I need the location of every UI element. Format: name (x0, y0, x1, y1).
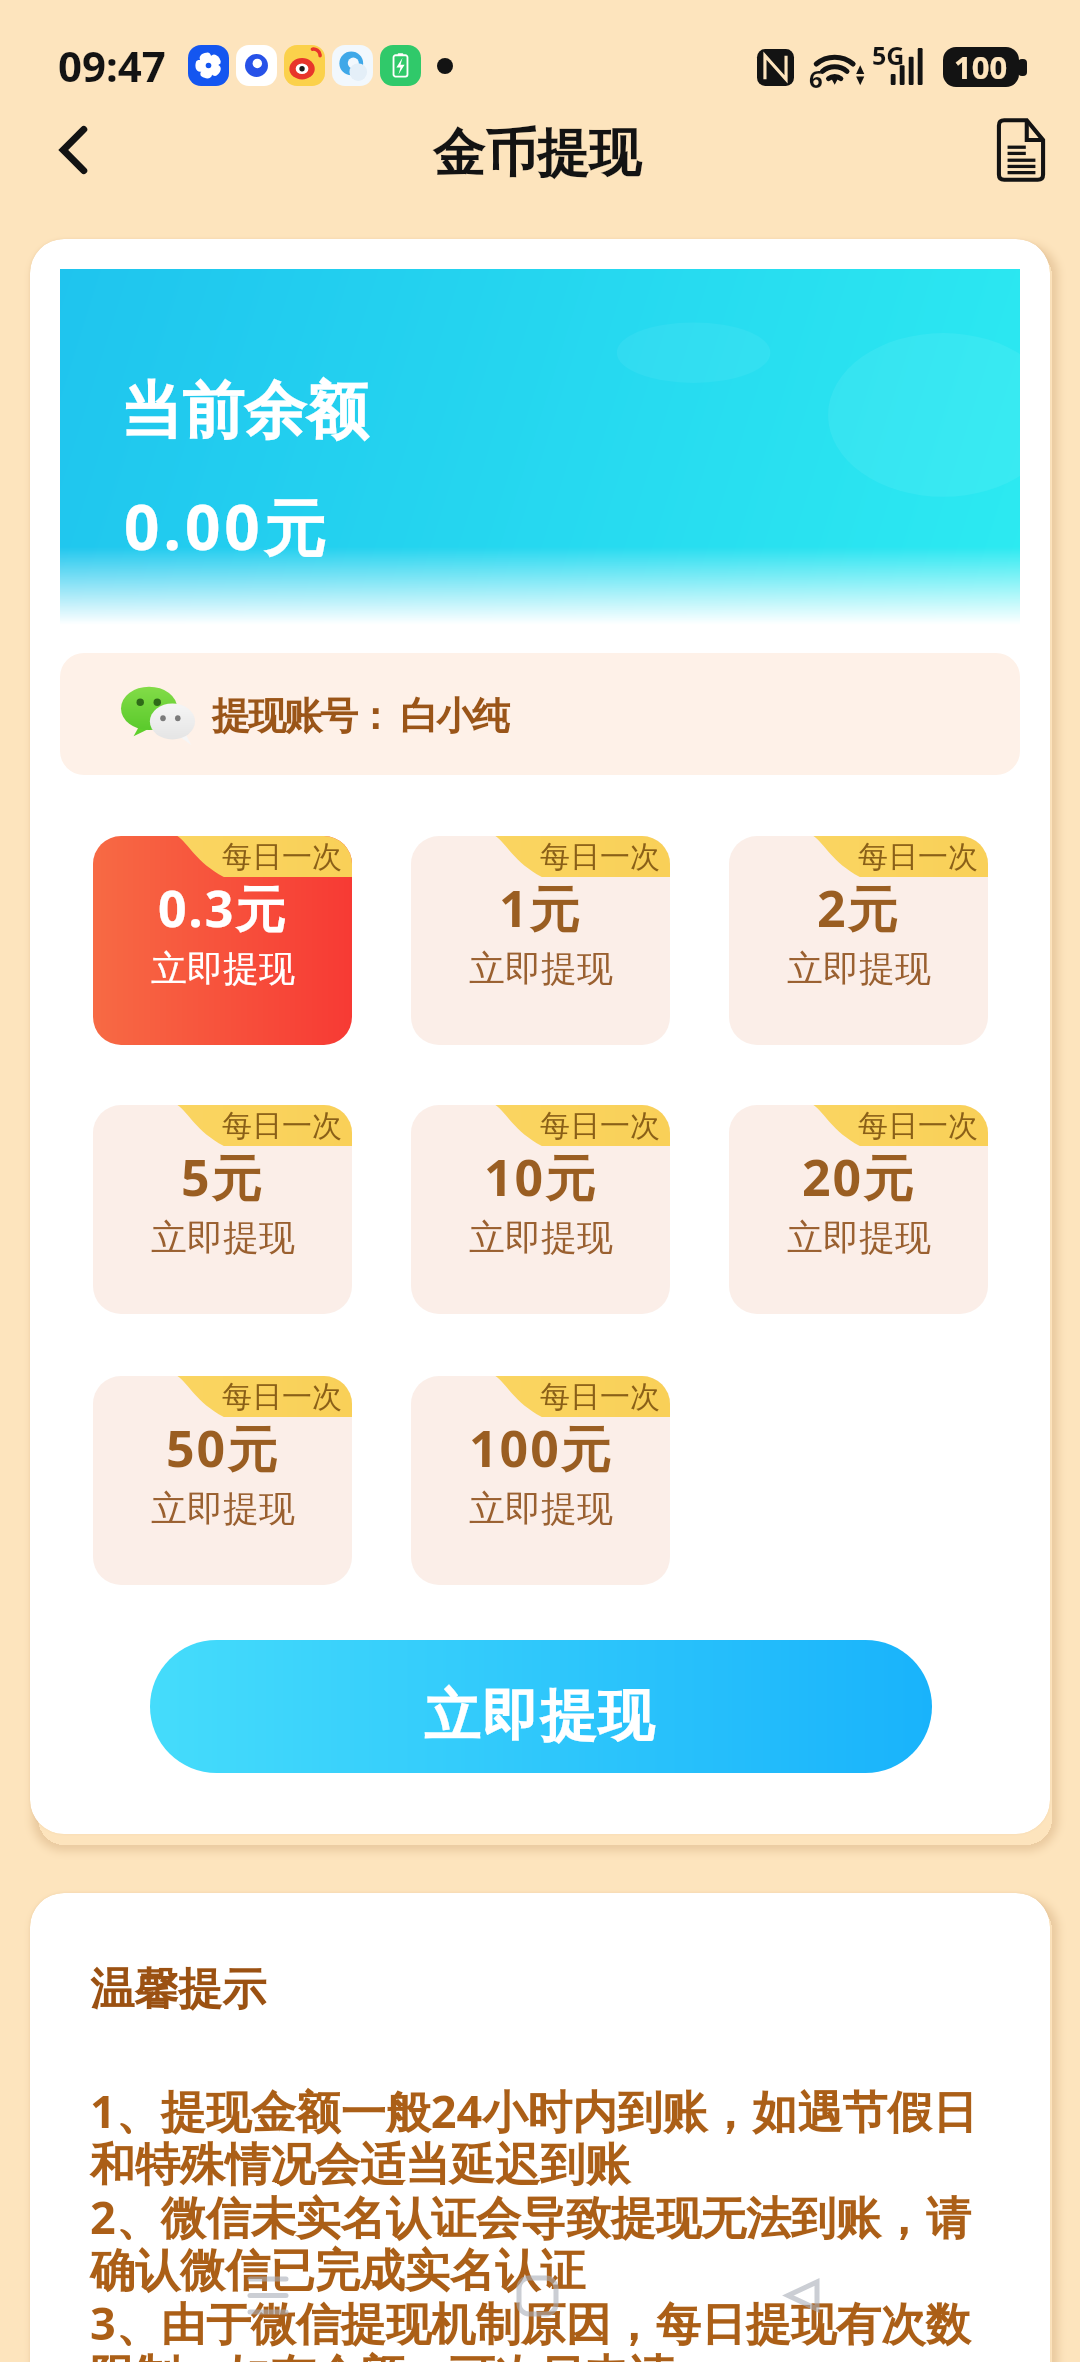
button[interactable]: 提现账号： 白小纯 (60, 653, 1020, 775)
staticText: 2元 (817, 874, 900, 942)
staticText: 当前余额 (120, 372, 368, 450)
button[interactable]: 每日一次 (93, 1376, 352, 1585)
staticText: 立即提现 (787, 946, 931, 991)
staticText: 每日一次 (858, 1107, 978, 1145)
staticText: 100元 (469, 1414, 613, 1482)
staticText: 立即提现 (151, 1215, 295, 1260)
staticText: 每日一次 (540, 1378, 660, 1416)
staticText: 5G (872, 38, 905, 72)
button[interactable]: Withdraw records (978, 107, 1064, 193)
staticText: 09:47 (58, 37, 166, 94)
button[interactable]: 每日一次 (411, 1376, 670, 1585)
staticText: 0.3元 (158, 874, 288, 942)
staticText: 温馨提示 (90, 1962, 266, 2017)
staticText: 100 (954, 47, 1008, 86)
button[interactable]: 立即提现 (150, 1640, 932, 1773)
button[interactable]: 每日一次 (411, 1105, 670, 1314)
staticText: 每日一次 (540, 1107, 660, 1145)
button[interactable]: Back (30, 107, 116, 193)
staticText: 0.00元 (124, 484, 330, 569)
button[interactable]: 每日一次 (93, 1105, 352, 1314)
button[interactable]: 每日一次 (729, 1105, 988, 1314)
button[interactable]: 每日一次 (729, 836, 988, 1045)
staticText: 提现账号： 白小纯 (212, 688, 508, 740)
staticText: 5元 (181, 1143, 264, 1211)
staticText: 20元 (802, 1143, 916, 1211)
staticText: 立即提现 (423, 1681, 655, 1752)
staticText: 1、提现金额一般24小时内到账，如遇节假日 和特殊情况会适当延迟到账 2、微信未… (90, 2080, 978, 2362)
staticText: 立即提现 (469, 1486, 613, 1531)
button[interactable]: 每日一次 (411, 836, 670, 1045)
button[interactable]: 每日一次 (93, 836, 352, 1045)
staticText: 6 (809, 62, 823, 95)
staticText: 每日一次 (858, 838, 978, 876)
staticText: 每日一次 (222, 1378, 342, 1416)
staticText: 1元 (499, 874, 582, 942)
staticText: 50元 (166, 1414, 280, 1482)
staticText: 金币提现 (433, 121, 641, 187)
staticText: 立即提现 (151, 946, 295, 991)
staticText: 立即提现 (469, 1215, 613, 1260)
staticText: 每日一次 (222, 1107, 342, 1145)
staticText: 每日一次 (222, 838, 342, 876)
staticText: 每日一次 (540, 838, 660, 876)
staticText: 立即提现 (787, 1215, 931, 1260)
staticText: 10元 (484, 1143, 598, 1211)
staticText: 立即提现 (469, 946, 613, 991)
staticText: 立即提现 (151, 1486, 295, 1531)
